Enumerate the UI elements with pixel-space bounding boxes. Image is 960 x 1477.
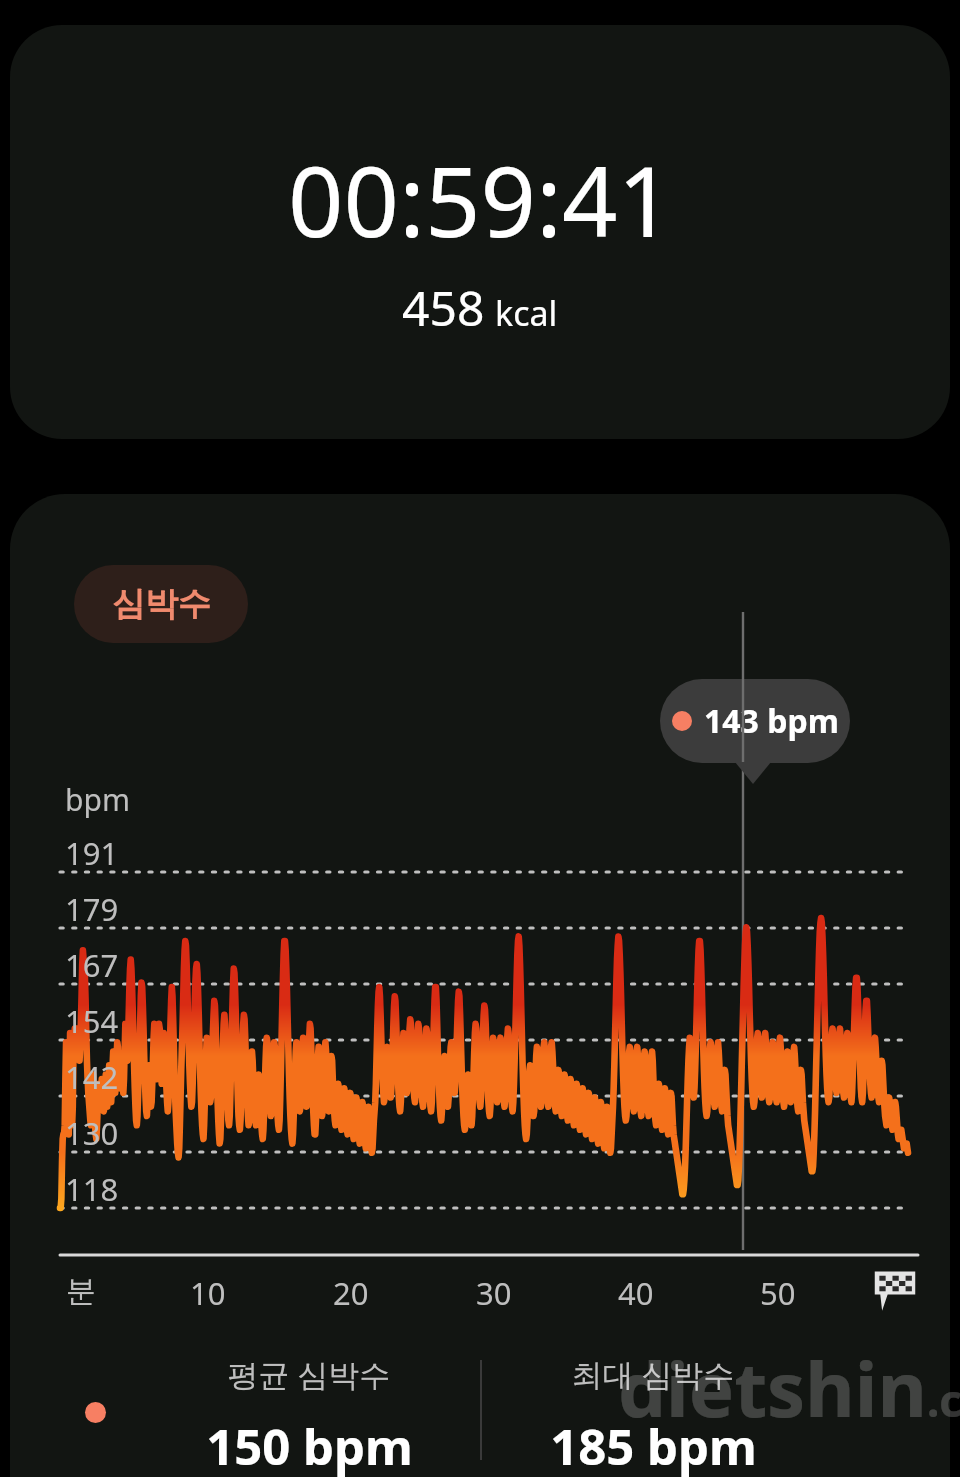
- staticText: 40: [618, 1272, 654, 1314]
- staticText: 00:59:41: [288, 133, 673, 265]
- staticText: 최대 심박수: [571, 1353, 735, 1395]
- button[interactable]: Finish: [872, 1267, 918, 1313]
- staticText: 심박수: [112, 583, 211, 625]
- staticText: 191: [65, 832, 119, 874]
- staticText: bpm: [65, 779, 130, 820]
- staticText: dietshin: [618, 1336, 927, 1440]
- staticText: 분: [66, 1272, 96, 1310]
- staticText: 118: [65, 1168, 119, 1210]
- staticText: .com: [927, 1370, 960, 1430]
- button[interactable]: 평균 심박수: [138, 1340, 480, 1477]
- staticText: 130: [65, 1112, 119, 1154]
- staticText: 20: [333, 1272, 369, 1314]
- staticText: 30: [476, 1272, 512, 1314]
- staticText: 10: [190, 1272, 226, 1314]
- staticText: 458: [402, 275, 485, 340]
- staticText: kcal: [495, 290, 558, 336]
- staticText: 평균 심박수: [227, 1353, 391, 1395]
- button[interactable]: 심박수: [74, 565, 248, 643]
- button[interactable]: 143 bpm: [660, 679, 850, 763]
- staticText: 167: [65, 944, 119, 986]
- staticText: 154: [65, 1000, 119, 1042]
- staticText: 179: [65, 888, 119, 930]
- staticText: 142: [65, 1056, 119, 1098]
- staticText: 50: [760, 1272, 796, 1314]
- staticText: 150 bpm: [206, 1413, 413, 1477]
- staticText: 143 bpm: [704, 699, 839, 743]
- button[interactable]: 최대 심박수: [482, 1340, 824, 1477]
- button[interactable]: 00:59:41: [10, 25, 950, 439]
- staticText: 185 bpm: [550, 1413, 757, 1477]
